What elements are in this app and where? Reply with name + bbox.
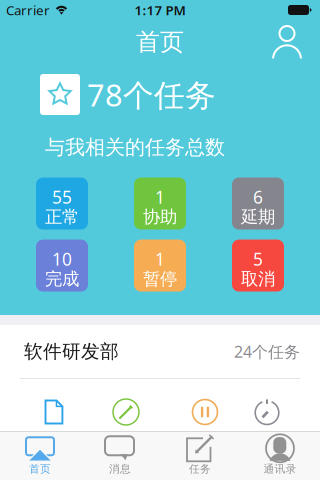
- staticText: 暂停: [143, 268, 177, 290]
- button[interactable]: 首页: [0, 432, 80, 480]
- button[interactable]: 1: [134, 178, 186, 230]
- staticText: 软件研发部: [24, 340, 119, 363]
- button[interactable]: 5: [232, 240, 284, 292]
- button[interactable]: 通讯录: [240, 432, 320, 480]
- button[interactable]: 软件研发部: [0, 325, 320, 378]
- button[interactable]: 6: [232, 178, 284, 230]
- staticText: 10: [52, 247, 72, 270]
- button[interactable]: 任务单: [44, 399, 63, 424]
- staticText: 与我相关的任务总数: [45, 135, 225, 160]
- staticText: 通讯录: [263, 462, 296, 475]
- staticText: 正常: [45, 206, 79, 228]
- button[interactable]: 编辑: [112, 398, 139, 425]
- staticText: 78个任务: [87, 74, 216, 115]
- button[interactable]: 10: [36, 240, 88, 292]
- button[interactable]: 暂停: [192, 399, 217, 424]
- staticText: 消息: [109, 462, 131, 475]
- staticText: 首页: [29, 462, 51, 475]
- staticText: 取消: [241, 268, 275, 290]
- staticText: 首页: [136, 27, 184, 57]
- staticText: 1: [155, 247, 165, 270]
- staticText: 完成: [45, 268, 79, 290]
- staticText: 协助: [143, 206, 177, 228]
- button[interactable]: 任务: [160, 432, 240, 480]
- staticText: 24个任务: [234, 341, 300, 362]
- staticText: 1:17 PM: [134, 1, 185, 19]
- staticText: 6: [253, 185, 263, 208]
- button[interactable]: 个人中心: [273, 25, 320, 59]
- staticText: 5: [253, 247, 263, 270]
- button[interactable]: 1: [134, 240, 186, 292]
- button[interactable]: 55: [36, 178, 88, 230]
- staticText: 任务: [189, 462, 211, 475]
- button[interactable]: 消息: [80, 432, 160, 480]
- staticText: 55: [52, 185, 72, 208]
- staticText: Carrier: [6, 1, 50, 19]
- staticText: 延期: [241, 206, 275, 228]
- button[interactable]: 延期: [253, 398, 280, 425]
- staticText: 1: [155, 185, 165, 208]
